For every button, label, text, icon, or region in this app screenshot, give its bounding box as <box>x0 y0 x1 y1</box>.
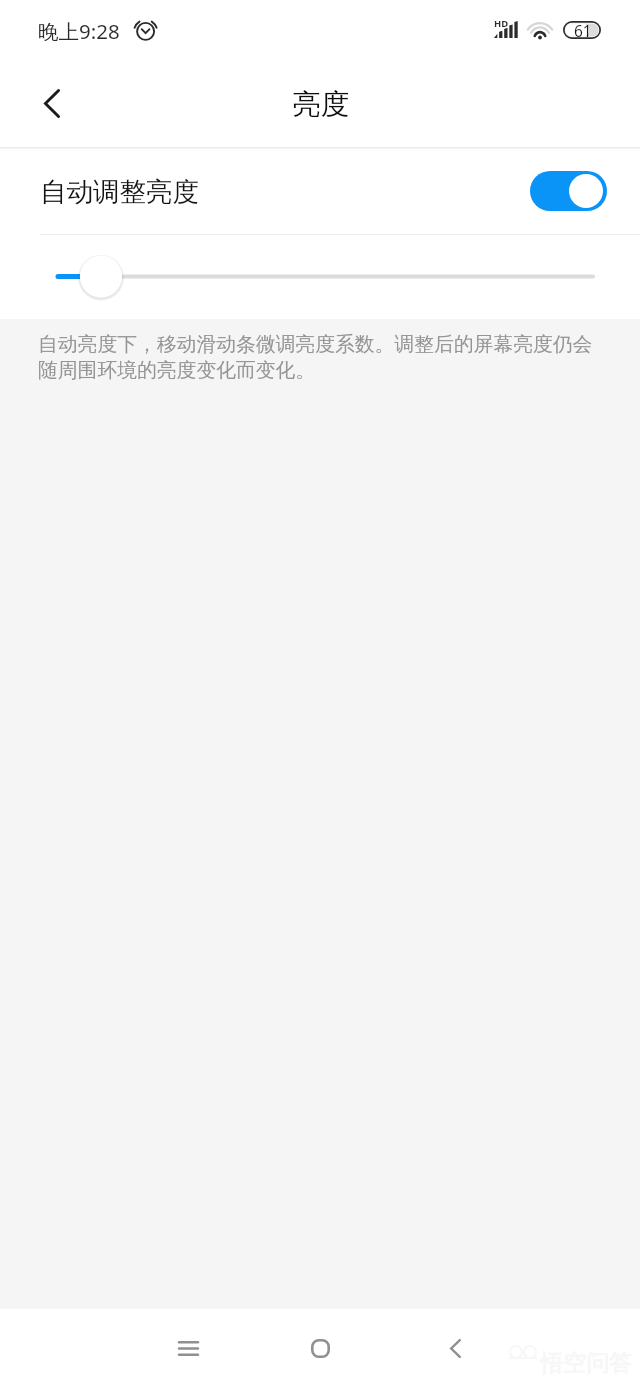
button[interactable]: Brightness level <box>0 235 640 319</box>
button[interactable]: 自动调整亮度 <box>0 149 640 234</box>
staticText: 悟空问答 <box>540 1349 632 1378</box>
button[interactable]: Adjust brightness automatically <box>530 171 607 211</box>
staticText: 晚上9:28 <box>38 17 120 45</box>
button[interactable]: Back <box>25 77 78 130</box>
staticText: 61 <box>574 20 592 38</box>
staticText: 自动调整亮度 <box>40 175 199 208</box>
button[interactable]: Menu <box>153 1313 223 1383</box>
staticText: HD <box>494 17 509 30</box>
staticText: 自动亮度下，移动滑动条微调亮度系数。调整后的屏幕亮度仍会随周围环境的亮度变化而变… <box>38 332 602 383</box>
button[interactable]: Back <box>420 1313 490 1383</box>
staticText: 亮度 <box>292 87 349 123</box>
button[interactable]: Home <box>285 1313 355 1383</box>
